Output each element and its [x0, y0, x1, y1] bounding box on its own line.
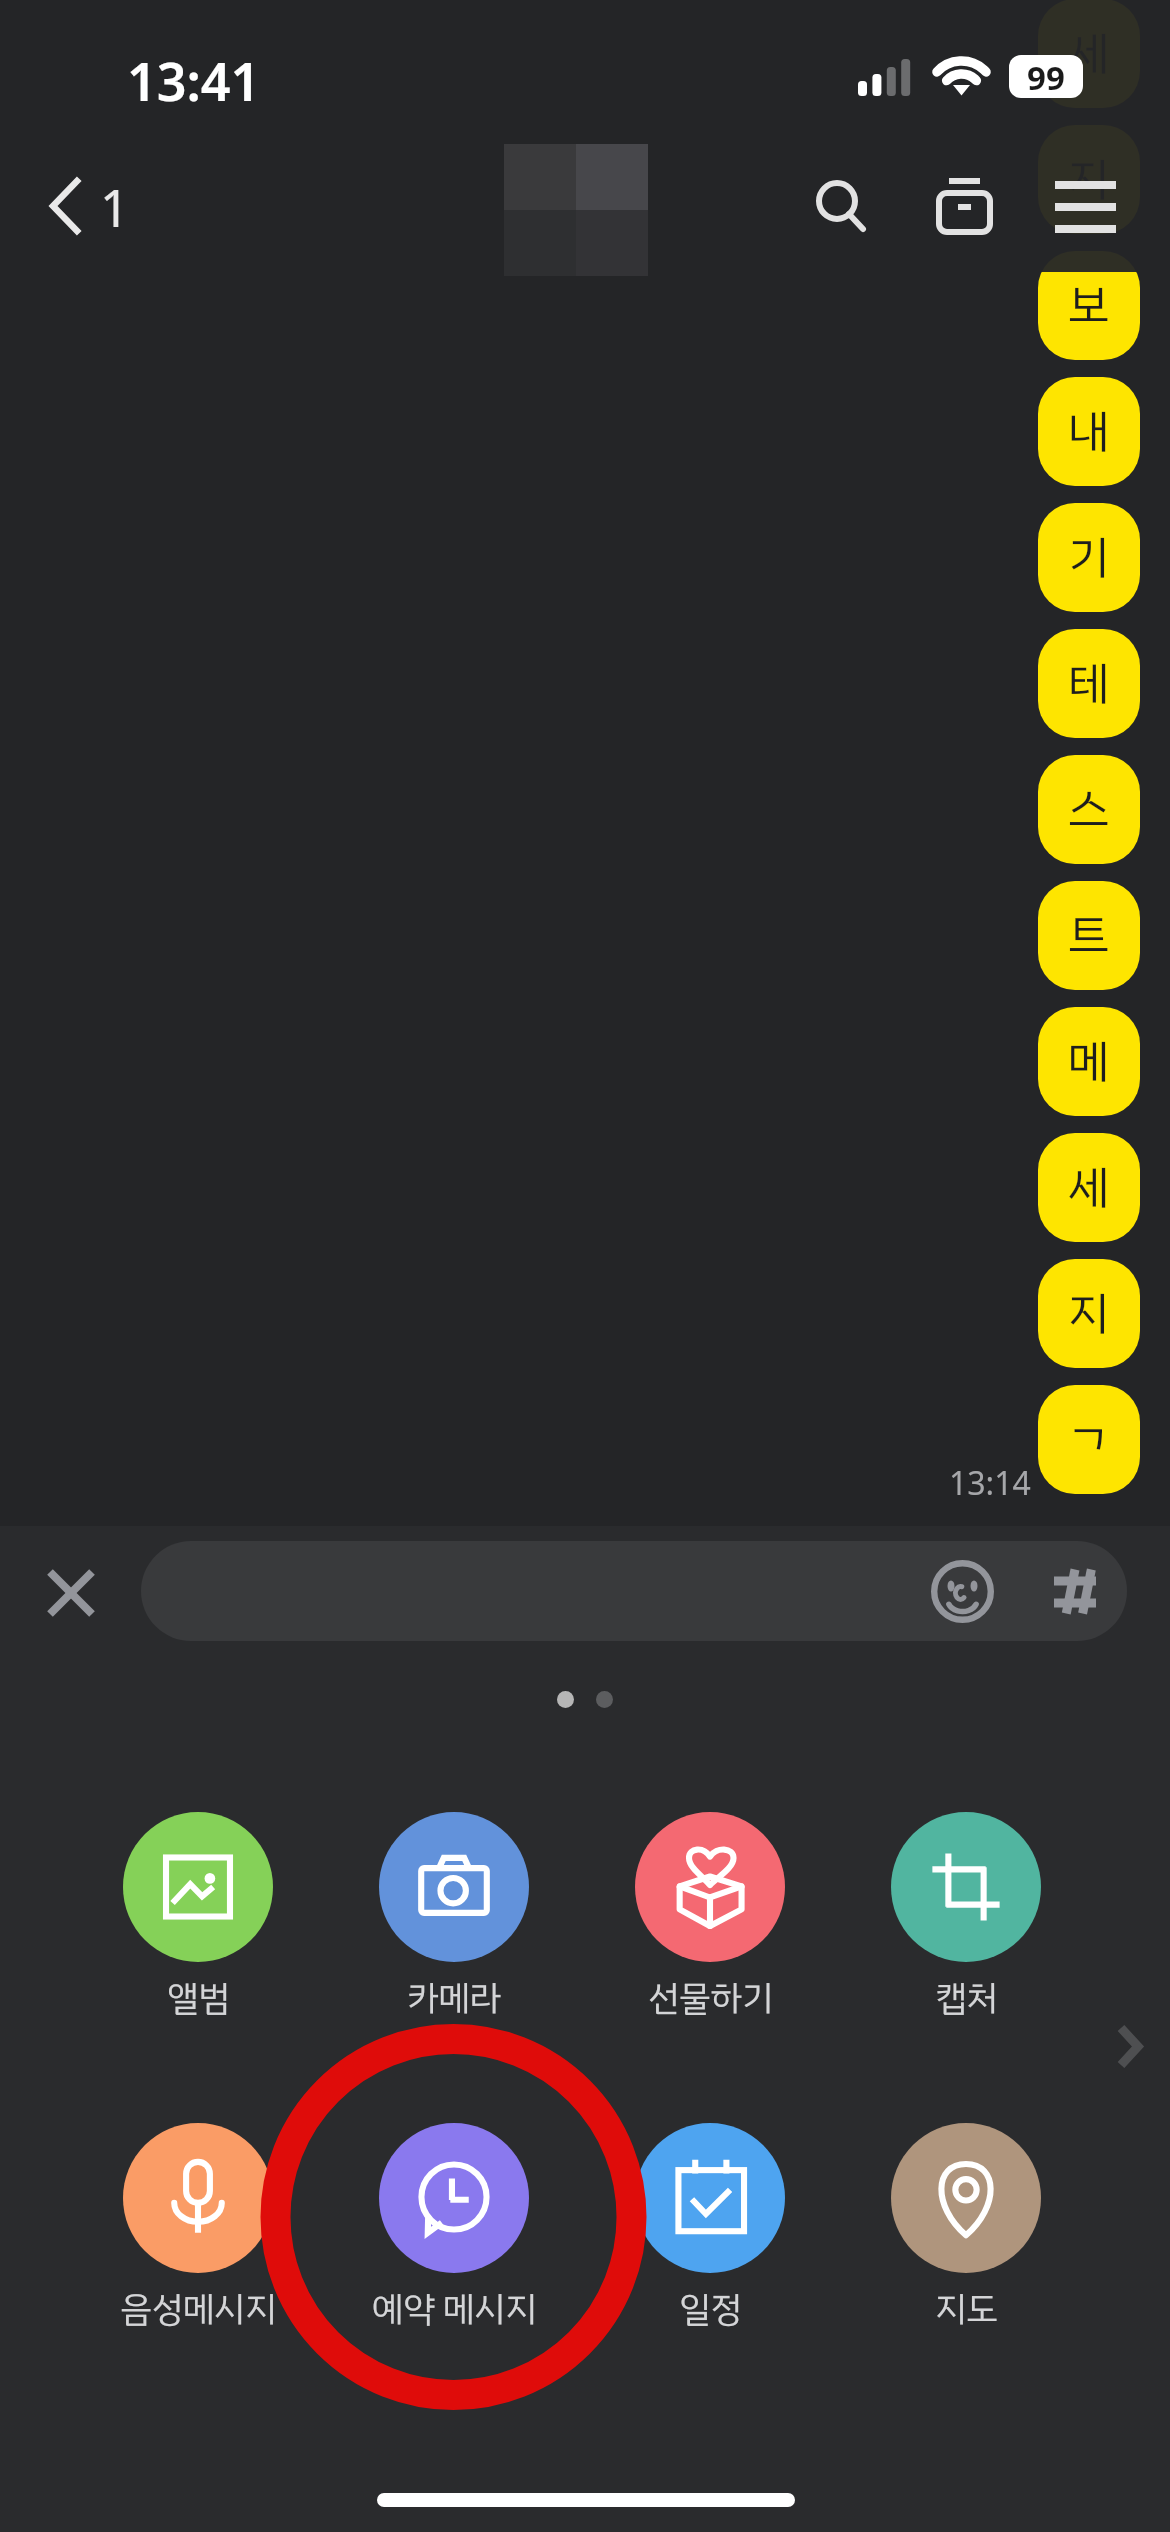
staticText: 선물하기 — [648, 1972, 773, 2025]
button[interactable]: 지도 — [838, 2123, 1094, 2339]
staticText: 앨범 — [167, 1972, 230, 2025]
button[interactable]: 캡처 — [838, 1812, 1094, 2028]
button[interactable]: 선물하기 — [582, 1812, 838, 2028]
staticText: 테 — [1068, 649, 1110, 718]
button[interactable]: 예약 메시지 — [326, 2123, 582, 2339]
button[interactable]: Hashtag — [1022, 1541, 1127, 1641]
staticText: 내 — [1068, 397, 1110, 466]
staticText: ㄱ — [1068, 1405, 1110, 1474]
button[interactable]: 앨범 — [70, 1812, 326, 2028]
staticText: 13:14 — [949, 1461, 1031, 1505]
staticText: 카메라 — [407, 1972, 501, 2025]
button[interactable]: 음성메시지 — [70, 2123, 326, 2339]
button[interactable]: ㄱ — [1038, 1385, 1140, 1494]
button[interactable]: 세 — [1038, 0, 1140, 108]
staticText: 세 — [1068, 19, 1110, 88]
button[interactable]: 지 — [1038, 125, 1140, 234]
staticText: 세 — [1068, 1153, 1110, 1222]
staticText: 음성메시지 — [120, 2283, 277, 2336]
button[interactable]: 보 — [1038, 251, 1140, 360]
staticText: 트 — [1068, 901, 1110, 970]
staticText: 보 — [1068, 271, 1110, 340]
button[interactable]: Close — [12, 1534, 130, 1652]
button[interactable]: 테 — [1038, 629, 1140, 738]
staticText: 캡처 — [935, 1972, 998, 2025]
staticText: 지 — [1068, 1279, 1110, 1348]
button[interactable]: Back — [28, 161, 152, 251]
button[interactable]: More attachments — [1083, 1985, 1170, 2105]
staticText: 지 — [1068, 145, 1110, 214]
button[interactable]: 카메라 — [326, 1812, 582, 2028]
button[interactable]: 트 — [1038, 881, 1140, 990]
button[interactable]: 세 — [1038, 1133, 1140, 1242]
button[interactable]: Menu — [1035, 155, 1135, 255]
button[interactable]: 메 — [1038, 1007, 1140, 1116]
button[interactable]: 내 — [1038, 377, 1140, 486]
button[interactable]: 스 — [1038, 755, 1140, 864]
staticText: 기 — [1068, 523, 1110, 592]
staticText: 스 — [1068, 775, 1110, 844]
button[interactable]: 일정 — [582, 2123, 838, 2339]
button[interactable]: 기 — [1038, 503, 1140, 612]
button[interactable]: 지 — [1038, 1259, 1140, 1368]
staticText: 13:41 — [127, 45, 261, 116]
staticText: 1 — [100, 172, 130, 241]
staticText: 지도 — [935, 2283, 998, 2336]
staticText: 메 — [1068, 1027, 1110, 1096]
button[interactable]: Emoticon — [141, 1541, 1127, 1641]
staticText: 99 — [1027, 55, 1065, 98]
button[interactable]: Page indicator — [540, 1674, 630, 1724]
button[interactable]: Emoticon — [902, 1541, 1022, 1641]
button[interactable]: Chat room title — [504, 144, 648, 276]
button[interactable]: Chatroom settings — [914, 156, 1014, 256]
staticText: 일정 — [679, 2283, 742, 2336]
button[interactable]: Search — [791, 156, 891, 256]
staticText: 예약 메시지 — [372, 2283, 537, 2336]
